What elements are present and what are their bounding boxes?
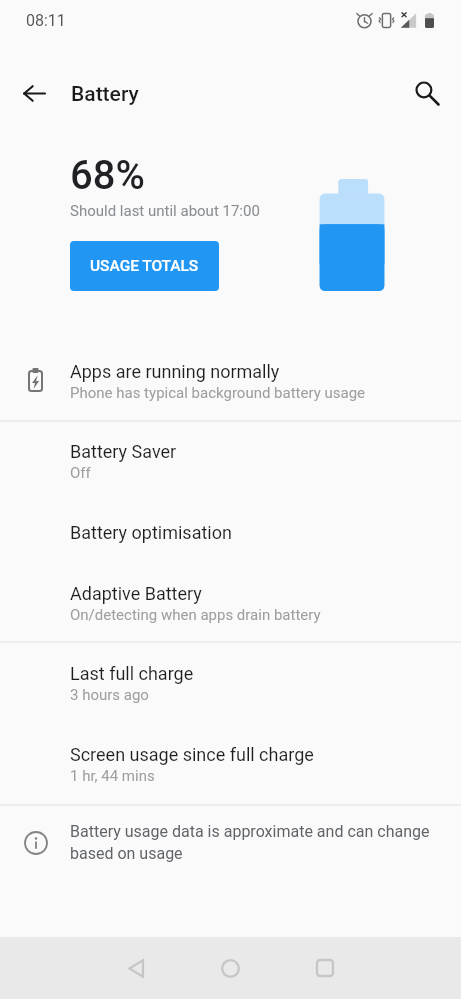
button[interactable]: Search [404, 70, 452, 118]
button[interactable]: Last full charge [0, 643, 461, 724]
staticText: 1 hr, 44 mins [70, 766, 155, 785]
staticText: Screen usage since full charge [70, 744, 314, 766]
button[interactable]: Battery Saver [0, 421, 461, 502]
button[interactable]: Back [105, 937, 167, 999]
staticText: Battery [71, 82, 139, 106]
staticText: 68% [70, 154, 145, 198]
staticText: Last full charge [70, 663, 194, 685]
staticText: Phone has typical background battery usa… [70, 383, 366, 402]
staticText: 08:11 [26, 12, 66, 30]
staticText: On/detecting when apps drain battery [70, 605, 321, 624]
button[interactable]: Battery optimisation [0, 502, 461, 564]
staticText: Apps are running normally [70, 361, 280, 383]
staticText: Battery usage data is approximate and ca… [70, 820, 435, 864]
button[interactable]: Adaptive Battery [0, 563, 461, 644]
button[interactable]: Back [10, 69, 58, 117]
staticText: 3 hours ago [70, 685, 149, 704]
staticText: Should last until about 17:00 [70, 200, 260, 220]
staticText: Adaptive Battery [70, 583, 202, 605]
button[interactable]: Recent apps [294, 937, 356, 999]
button[interactable]: Apps are running normally [0, 347, 461, 419]
button[interactable]: USAGE TOTALS [70, 241, 219, 291]
button[interactable]: Screen usage since full charge [0, 724, 461, 805]
staticText: USAGE TOTALS [90, 257, 199, 275]
staticText: Battery Saver [70, 441, 177, 463]
button[interactable]: Home [199, 937, 261, 999]
staticText: Off [70, 463, 91, 482]
staticText: Battery optimisation [70, 522, 232, 544]
